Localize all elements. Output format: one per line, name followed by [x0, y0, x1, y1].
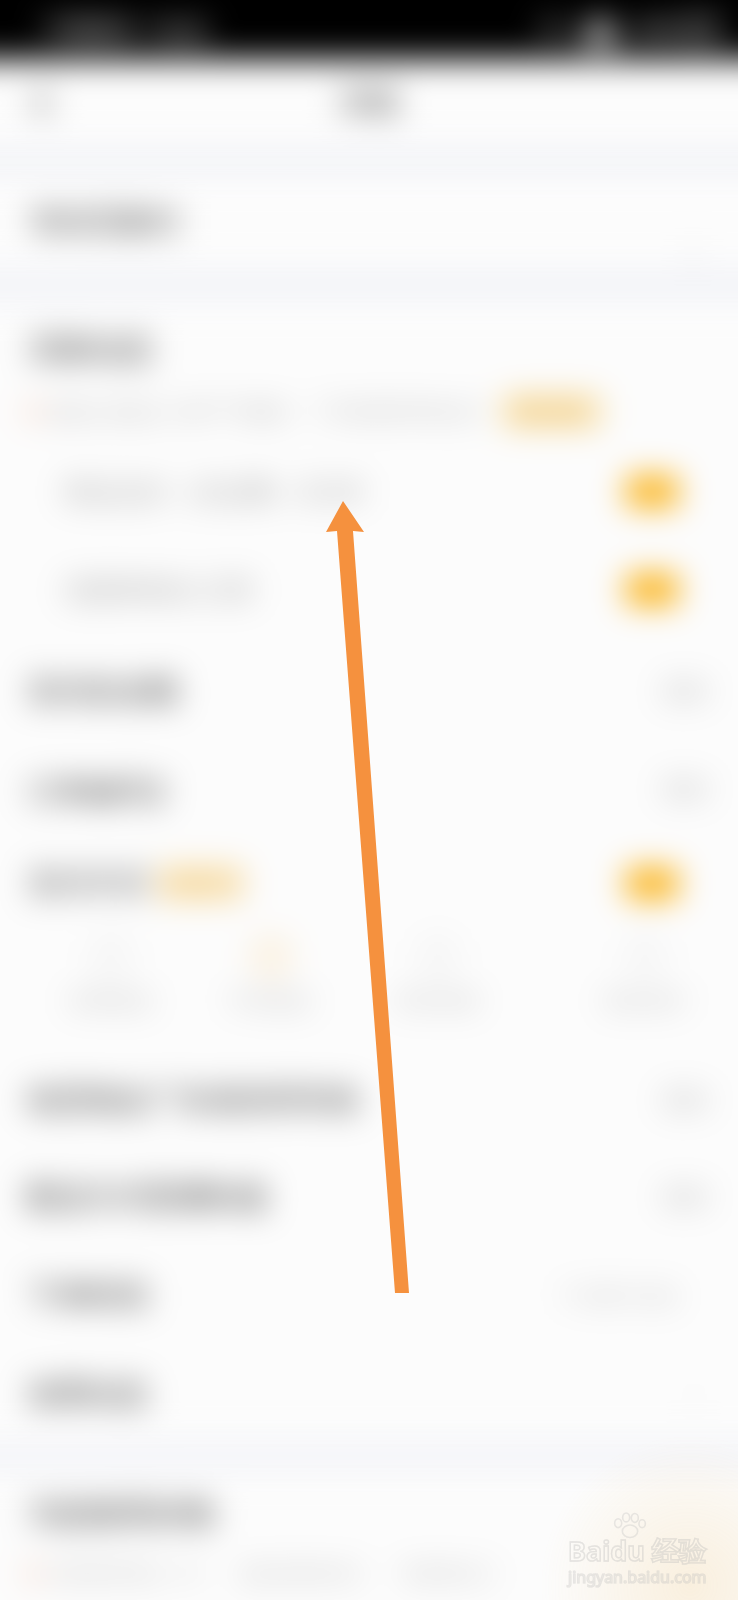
button[interactable]: 返回: [16, 76, 70, 130]
staticText: 为您推荐好物: [28, 1494, 214, 1533]
button[interactable]: 发票信息: [0, 1375, 738, 1413]
staticText: 中国移动: [44, 16, 136, 45]
staticText: 订单编号2: [28, 770, 166, 808]
staticText: 4G: [540, 16, 568, 45]
button[interactable]: 下单时间: [0, 1277, 738, 1315]
staticText: 默认地址: [516, 400, 588, 423]
staticText: 10:42: [148, 15, 207, 46]
staticText: 详情: [339, 84, 399, 122]
button[interactable]: 支付方式: [0, 864, 738, 902]
staticText: 84%: [634, 15, 678, 45]
staticText: 在线支付: [161, 871, 241, 896]
button[interactable]: 实付款金额: [0, 672, 738, 710]
staticText: 下单时间: [28, 1277, 148, 1315]
button[interactable]: 商品总价（含运费）共2件: [0, 472, 738, 510]
staticText: 268: [634, 477, 671, 506]
staticText: 买家信息: [29, 330, 153, 369]
staticText: 248: [634, 869, 671, 898]
button[interactable]: 申请退款: [209, 938, 333, 1042]
button[interactable]: 收货地址广东省深圳市南: [0, 1081, 738, 1119]
staticText: 实付款金额: [28, 672, 178, 710]
button[interactable]: 等待买家付: [0, 176, 738, 268]
staticText: Baidu 经验: [568, 1532, 706, 1569]
staticText: 发票信息: [28, 1375, 148, 1413]
staticText: 配送方式普通快递: [28, 1178, 268, 1216]
staticText: 20: [640, 575, 665, 604]
staticText: 支付方式: [28, 864, 148, 902]
staticText: 等待买家付: [30, 203, 180, 241]
button[interactable]: 联系卖家: [376, 938, 500, 1042]
button[interactable]: 订单编号2: [0, 770, 738, 808]
staticText: 收货地址广东省深圳市南: [28, 1081, 358, 1119]
button[interactable]: 优惠券抵扣 已用: [0, 570, 738, 608]
staticText: jingyan.baidu.com: [568, 1566, 707, 1588]
button[interactable]: 配送方式普通快递: [0, 1178, 738, 1216]
staticText: 商品总价（含运费）共2件: [64, 473, 365, 509]
